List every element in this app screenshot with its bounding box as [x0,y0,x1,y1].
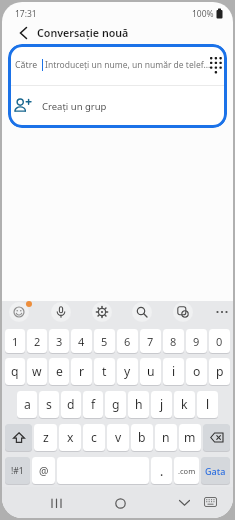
staticText: @ [39,464,49,478]
staticText: v [115,429,122,446]
button[interactable]: f [83,391,103,418]
button[interactable] [51,302,71,322]
button[interactable]: 8 [163,329,184,353]
staticText: k [181,396,188,413]
staticText: . [160,463,164,479]
staticText: a [24,396,31,413]
button[interactable] [92,302,112,322]
staticText: 2 [34,334,41,349]
button[interactable]: 4 [71,329,92,353]
button[interactable]: 6 [117,329,138,353]
staticText: r [79,363,85,380]
button[interactable]: v [107,424,129,451]
button[interactable]: i [163,358,184,385]
button[interactable]: j [151,391,172,418]
staticText: c [91,429,97,446]
button[interactable]: x [59,424,81,451]
staticText: 7 [147,334,154,349]
button[interactable]: p [209,358,230,385]
button[interactable]: s [39,391,59,418]
button[interactable]: 3 [49,329,69,353]
button[interactable]: .com [174,457,199,484]
button[interactable] [132,302,152,322]
button[interactable] [213,302,231,322]
staticText: 9 [193,334,200,349]
button[interactable]: g [105,391,126,418]
button[interactable]: Creați un grup [8,86,227,128]
button[interactable]: @ [32,457,55,484]
button[interactable]: c [83,424,105,451]
staticText: u [147,363,155,380]
staticText: 17:31 [15,8,37,20]
staticText: .com [178,466,196,476]
button[interactable]: y [117,358,138,385]
button[interactable]: . [151,457,172,484]
button[interactable]: l [197,391,218,418]
staticText: p [216,363,224,380]
staticText: 1 [12,334,19,349]
button[interactable]: a [17,391,37,418]
staticText: Introduceți un nume, un număr de telef..… [45,59,210,71]
staticText: 8 [170,334,177,349]
button[interactable]: 7 [140,329,161,353]
button[interactable]: r [71,358,92,385]
button[interactable]: Gata [201,457,230,484]
staticText: 3 [56,334,63,349]
button[interactable] [111,496,129,510]
staticText: x [67,429,74,446]
button[interactable]: 0 [209,329,230,353]
staticText: h [135,396,143,413]
button[interactable]: u [140,358,161,385]
button[interactable]: z [34,424,57,451]
staticText: y [124,363,131,380]
button[interactable]: o [186,358,207,385]
staticText: 0 [216,334,223,349]
button[interactable] [175,496,193,510]
staticText: j [160,396,164,413]
button[interactable]: d [61,391,81,418]
staticText: q [11,363,19,380]
staticText: b [138,429,146,446]
staticText: z [43,429,49,446]
button[interactable]: 2 [27,329,47,353]
button[interactable] [9,302,29,322]
button[interactable]: 1 [5,329,25,353]
button[interactable]: n [155,424,177,451]
staticText: s [46,396,52,413]
button[interactable] [203,424,230,451]
staticText: Gata [205,465,226,477]
button[interactable]: 9 [186,329,207,353]
staticText: !#1 [11,465,24,477]
staticText: e [56,363,63,380]
button[interactable]: e [49,358,69,385]
button[interactable] [14,24,32,42]
button[interactable]: w [27,358,47,385]
staticText: f [91,396,96,413]
button[interactable] [173,302,193,322]
button[interactable] [48,496,66,510]
staticText: n [162,429,170,446]
staticText: w [32,363,42,380]
button[interactable]: Către [8,44,227,85]
staticText: 5 [101,334,108,349]
button[interactable]: q [5,358,25,385]
staticText: 100% [192,8,214,20]
staticText: 6 [124,334,131,349]
button[interactable]: !#1 [5,457,30,484]
staticText: i [172,363,176,380]
button[interactable]: b [131,424,153,451]
staticText: 4 [78,334,85,349]
button[interactable] [202,496,218,508]
staticText: d [67,396,75,413]
button[interactable]: h [128,391,149,418]
button[interactable]: k [174,391,195,418]
staticText: t [102,363,107,380]
button[interactable]: 5 [94,329,115,353]
staticText: g [112,396,120,413]
button[interactable]: m [179,424,201,451]
button[interactable] [5,424,32,451]
button[interactable]: t [94,358,115,385]
staticText: l [206,396,210,413]
staticText: m [184,429,196,446]
